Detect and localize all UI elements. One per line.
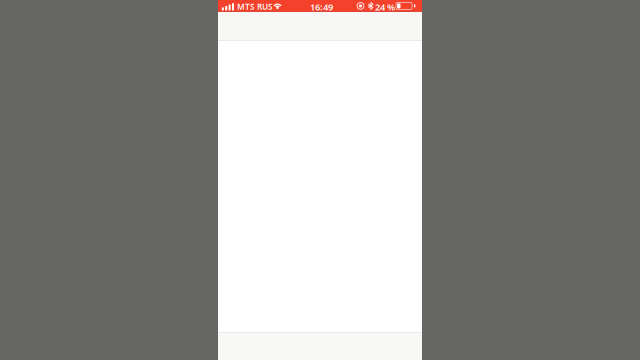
- staticText: MTS RUS: [237, 1, 273, 12]
- staticText: 16:49: [310, 1, 333, 13]
- staticText: 24 %: [375, 1, 395, 13]
